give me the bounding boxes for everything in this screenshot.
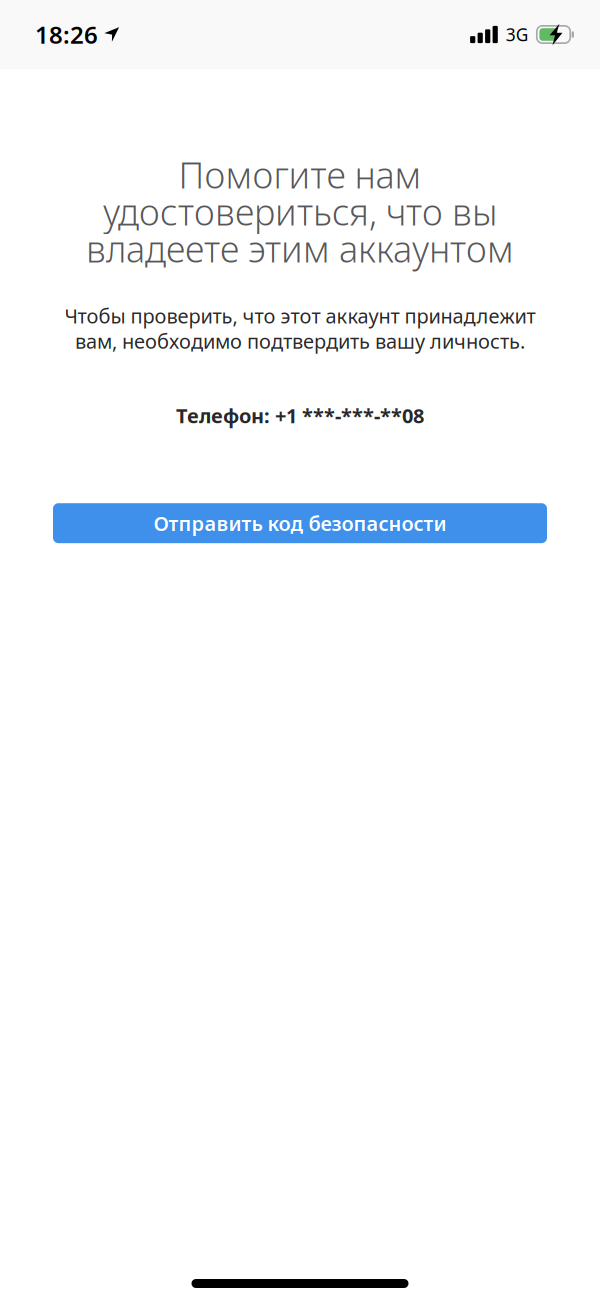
staticText: вам, необходимо подтвердить вашу личност… xyxy=(75,328,525,354)
button[interactable]: Отправить код безопасности xyxy=(53,503,547,543)
staticText: Помогите нам xyxy=(178,151,421,198)
staticText: 18:26 xyxy=(35,19,98,50)
staticText: Чтобы проверить, что этот аккаунт принад… xyxy=(64,302,535,329)
staticText: удостовериться, что вы xyxy=(103,188,497,235)
staticText: владеете этим аккаунтом xyxy=(86,225,514,272)
staticText: Телефон: +1 ***-***-**08 xyxy=(176,402,424,429)
staticText: 3G xyxy=(506,23,529,46)
staticText: Отправить код безопасности xyxy=(153,510,446,536)
